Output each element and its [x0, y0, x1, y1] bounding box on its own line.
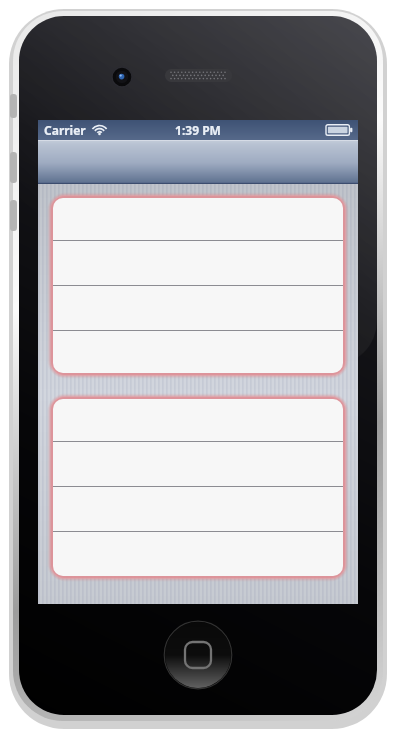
- button[interactable]: [53, 532, 343, 576]
- other: Wi-Fi signal strength: [92, 124, 107, 136]
- staticText: 1:39 PM: [175, 122, 221, 138]
- button[interactable]: [53, 331, 343, 373]
- button[interactable]: [53, 198, 343, 240]
- other: Battery level: [326, 124, 353, 136]
- staticText: Carrier: [44, 122, 86, 138]
- button[interactable]: [53, 399, 343, 441]
